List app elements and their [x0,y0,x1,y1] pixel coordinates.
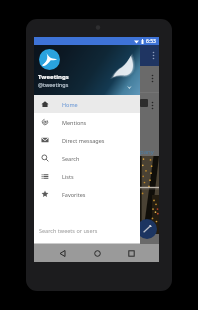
button[interactable]: Search [34,149,140,167]
staticText: pany [140,148,154,156]
staticText: Search [62,155,80,162]
button[interactable]: Mentions [34,113,140,131]
staticText: Favorites [62,191,86,198]
button[interactable]: Direct messages [34,131,140,149]
button[interactable]: Lists [34,167,140,185]
staticText: @tweetings [38,81,69,88]
button[interactable]: Home [90,246,104,260]
button[interactable]: Compose tweet [137,219,157,239]
staticText: Tweetings [38,73,69,81]
button[interactable]: Favorites [34,185,140,203]
staticText: 6:53 [146,38,156,45]
button[interactable]: Back [55,246,69,260]
staticText: Mentions [62,119,87,126]
staticText: Lists [62,173,74,180]
staticText: Home [62,101,78,108]
button[interactable]: Recent apps [124,246,138,260]
staticText: Search tweets or users [39,227,98,234]
button[interactable]: Home [34,95,140,113]
staticText: Direct messages [62,137,105,144]
